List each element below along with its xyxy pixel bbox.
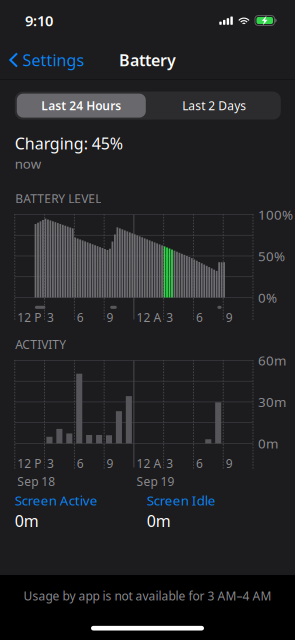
staticText: 50% <box>258 247 285 265</box>
staticText: Screen Idle <box>147 491 216 509</box>
staticText: 3 <box>166 309 173 325</box>
staticText: 3 <box>166 455 173 471</box>
staticText: BATTERY LEVEL <box>15 191 101 206</box>
staticText: 12 P <box>17 455 41 471</box>
staticText: 6 <box>77 309 84 325</box>
staticText: 3 <box>47 455 54 471</box>
button[interactable]: Last 24 Hours <box>15 92 148 120</box>
staticText: 9 <box>107 309 114 325</box>
staticText: Charging: 45% <box>15 133 123 154</box>
staticText: 3 <box>47 309 54 325</box>
button[interactable]: Settings <box>0 41 92 79</box>
staticText: 9:10 <box>25 11 53 30</box>
staticText: 30m <box>258 393 286 411</box>
staticText: Battery <box>119 49 176 71</box>
staticText: 100% <box>258 206 293 223</box>
staticText: ACTIVITY <box>15 336 66 352</box>
staticText: 12 A <box>136 309 161 325</box>
staticText: Last 24 Hours <box>41 98 121 113</box>
staticText: 6 <box>77 455 84 471</box>
staticText: 9 <box>226 455 233 471</box>
staticText: Sep 19 <box>136 473 174 489</box>
staticText: 0% <box>258 289 277 306</box>
staticText: 0m <box>15 510 39 531</box>
staticText: 6 <box>196 455 203 471</box>
staticText: 9 <box>226 309 233 325</box>
staticText: 6 <box>196 309 203 325</box>
staticText: 12 P <box>17 309 41 325</box>
staticText: Sep 18 <box>17 473 55 489</box>
staticText: 60m <box>258 352 286 369</box>
staticText: Settings <box>22 49 84 71</box>
staticText: 0m <box>147 510 171 531</box>
staticText: now <box>15 155 41 172</box>
staticText: 9 <box>107 455 114 471</box>
staticText: 0m <box>258 435 278 452</box>
staticText: Last 2 Days <box>182 98 246 113</box>
button[interactable]: Last 2 Days <box>148 92 281 120</box>
staticText: Usage by app is not available for 3 AM–4… <box>23 588 271 604</box>
staticText: 12 A <box>136 455 161 471</box>
staticText: Screen Active <box>15 491 98 509</box>
